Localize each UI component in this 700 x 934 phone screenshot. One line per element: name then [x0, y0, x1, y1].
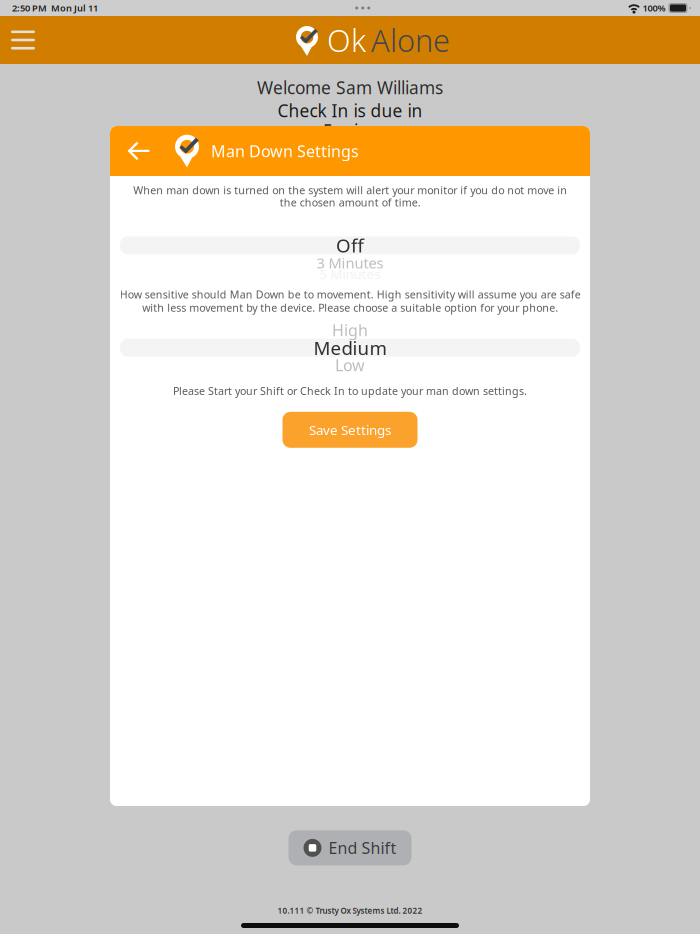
- staticText: Please Start your Shift or Check In to u…: [173, 384, 527, 398]
- staticText: Save Settings: [309, 421, 391, 439]
- staticText: When man down is turned on the system wi…: [133, 183, 567, 209]
- staticText: Medium: [313, 335, 386, 360]
- staticText: How sensitive should Man Down be to move…: [119, 287, 580, 315]
- staticText: High: [332, 319, 368, 341]
- staticText: 100%: [640, 2, 665, 14]
- staticText: Welcome Sam Williams: [257, 76, 443, 99]
- staticText: 5 mins: [323, 119, 377, 142]
- staticText: End Shift: [328, 837, 396, 858]
- button[interactable]: Save Settings: [282, 412, 417, 448]
- staticText: 2:50 PM Mon Jul 11: [12, 2, 98, 14]
- staticText: Low: [335, 354, 365, 376]
- button[interactable]: Menu: [0, 16, 46, 64]
- staticText: 3 Minutes: [316, 253, 383, 273]
- staticText: Check In is due in: [277, 99, 422, 122]
- staticText: 5 Minutes: [319, 265, 380, 283]
- staticText: Off: [336, 233, 364, 258]
- button[interactable]: End Shift: [288, 830, 411, 865]
- button[interactable]: Back: [110, 126, 175, 176]
- staticText: 10.111 © Trusty Ox Systems Ltd. 2022: [277, 905, 422, 916]
- staticText: Man Down Settings: [211, 140, 359, 162]
- staticText: Ok: [327, 20, 366, 60]
- staticText: Alone: [371, 20, 450, 60]
